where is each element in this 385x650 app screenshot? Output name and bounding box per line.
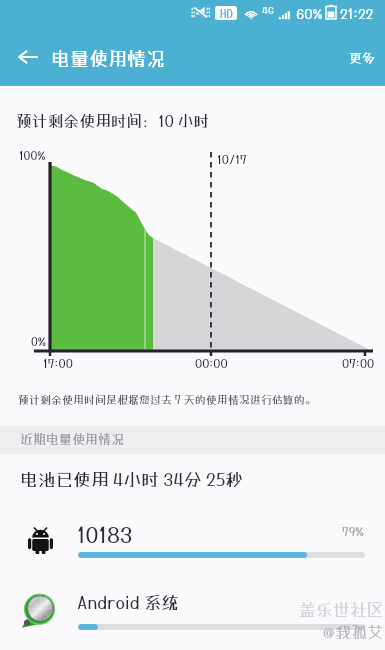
button[interactable]: Android 系统	[0, 578, 385, 646]
staticText: 21:22	[340, 5, 374, 22]
staticText: 00:00	[195, 356, 228, 370]
staticText: 07:00	[342, 356, 375, 370]
staticText: 电量使用情况	[51, 47, 166, 69]
button[interactable]: 更多	[331, 35, 385, 80]
staticText: 100%	[19, 149, 46, 163]
staticText: 更多	[349, 50, 376, 65]
staticText: 10/17	[217, 152, 247, 166]
button[interactable]: 10183	[0, 506, 385, 574]
staticText: 电池已使用 4小时 34分 25秒	[20, 469, 243, 490]
staticText: 预计剩余使用时间：10 小时	[16, 111, 210, 130]
button[interactable]: Back	[4, 28, 52, 76]
staticText: 17:00	[43, 356, 73, 370]
staticText: HD	[220, 7, 233, 20]
staticText: 盖乐世社区	[299, 599, 384, 619]
staticText: @我孤艾	[322, 622, 384, 641]
staticText: 60%	[296, 5, 323, 22]
staticText: 近期电量使用情况	[20, 431, 125, 446]
staticText: 4G	[262, 4, 274, 16]
staticText: Android 系统	[77, 592, 179, 612]
staticText: 预计剩余使用时间是根据您过去 7 天的使用情况进行估算的。	[18, 393, 316, 406]
staticText: 0%	[31, 335, 47, 349]
staticText: 79%	[342, 524, 364, 538]
staticText: 10183	[77, 522, 133, 548]
